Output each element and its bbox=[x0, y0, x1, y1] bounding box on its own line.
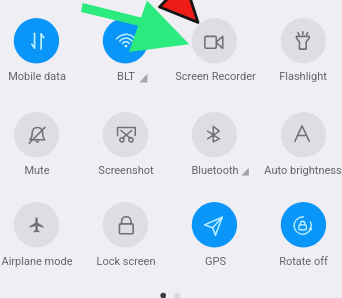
button[interactable]: Airplane mode bbox=[0, 192, 81, 273]
staticText: Screen Recorder bbox=[175, 70, 256, 83]
staticText: Screenshot bbox=[98, 164, 154, 177]
button[interactable]: Bluetooth bbox=[170, 102, 259, 183]
button[interactable]: Screenshot bbox=[81, 102, 170, 183]
staticText: Rotate off bbox=[279, 255, 328, 268]
button[interactable]: Rotate off bbox=[259, 192, 342, 273]
button[interactable]: Flashlight bbox=[259, 8, 342, 89]
staticText: Mobile data bbox=[8, 70, 66, 83]
button[interactable]: Auto brightness bbox=[259, 102, 342, 183]
staticText: Lock screen bbox=[96, 255, 156, 268]
button[interactable]: BLT bbox=[81, 8, 170, 89]
button[interactable]: GPS bbox=[170, 192, 259, 273]
button[interactable]: Mobile data bbox=[0, 8, 81, 89]
staticText: Flashlight bbox=[279, 70, 327, 83]
staticText: Mute bbox=[24, 164, 50, 177]
button[interactable]: Lock screen bbox=[81, 192, 170, 273]
button[interactable]: Mute bbox=[0, 102, 81, 183]
staticText: Airplane mode bbox=[1, 255, 73, 268]
staticText: Bluetooth bbox=[191, 164, 239, 177]
staticText: BLT bbox=[117, 70, 135, 83]
button[interactable]: Screen Recorder bbox=[170, 8, 259, 89]
staticText: GPS bbox=[205, 255, 226, 268]
staticText: Auto brightness bbox=[264, 164, 342, 177]
